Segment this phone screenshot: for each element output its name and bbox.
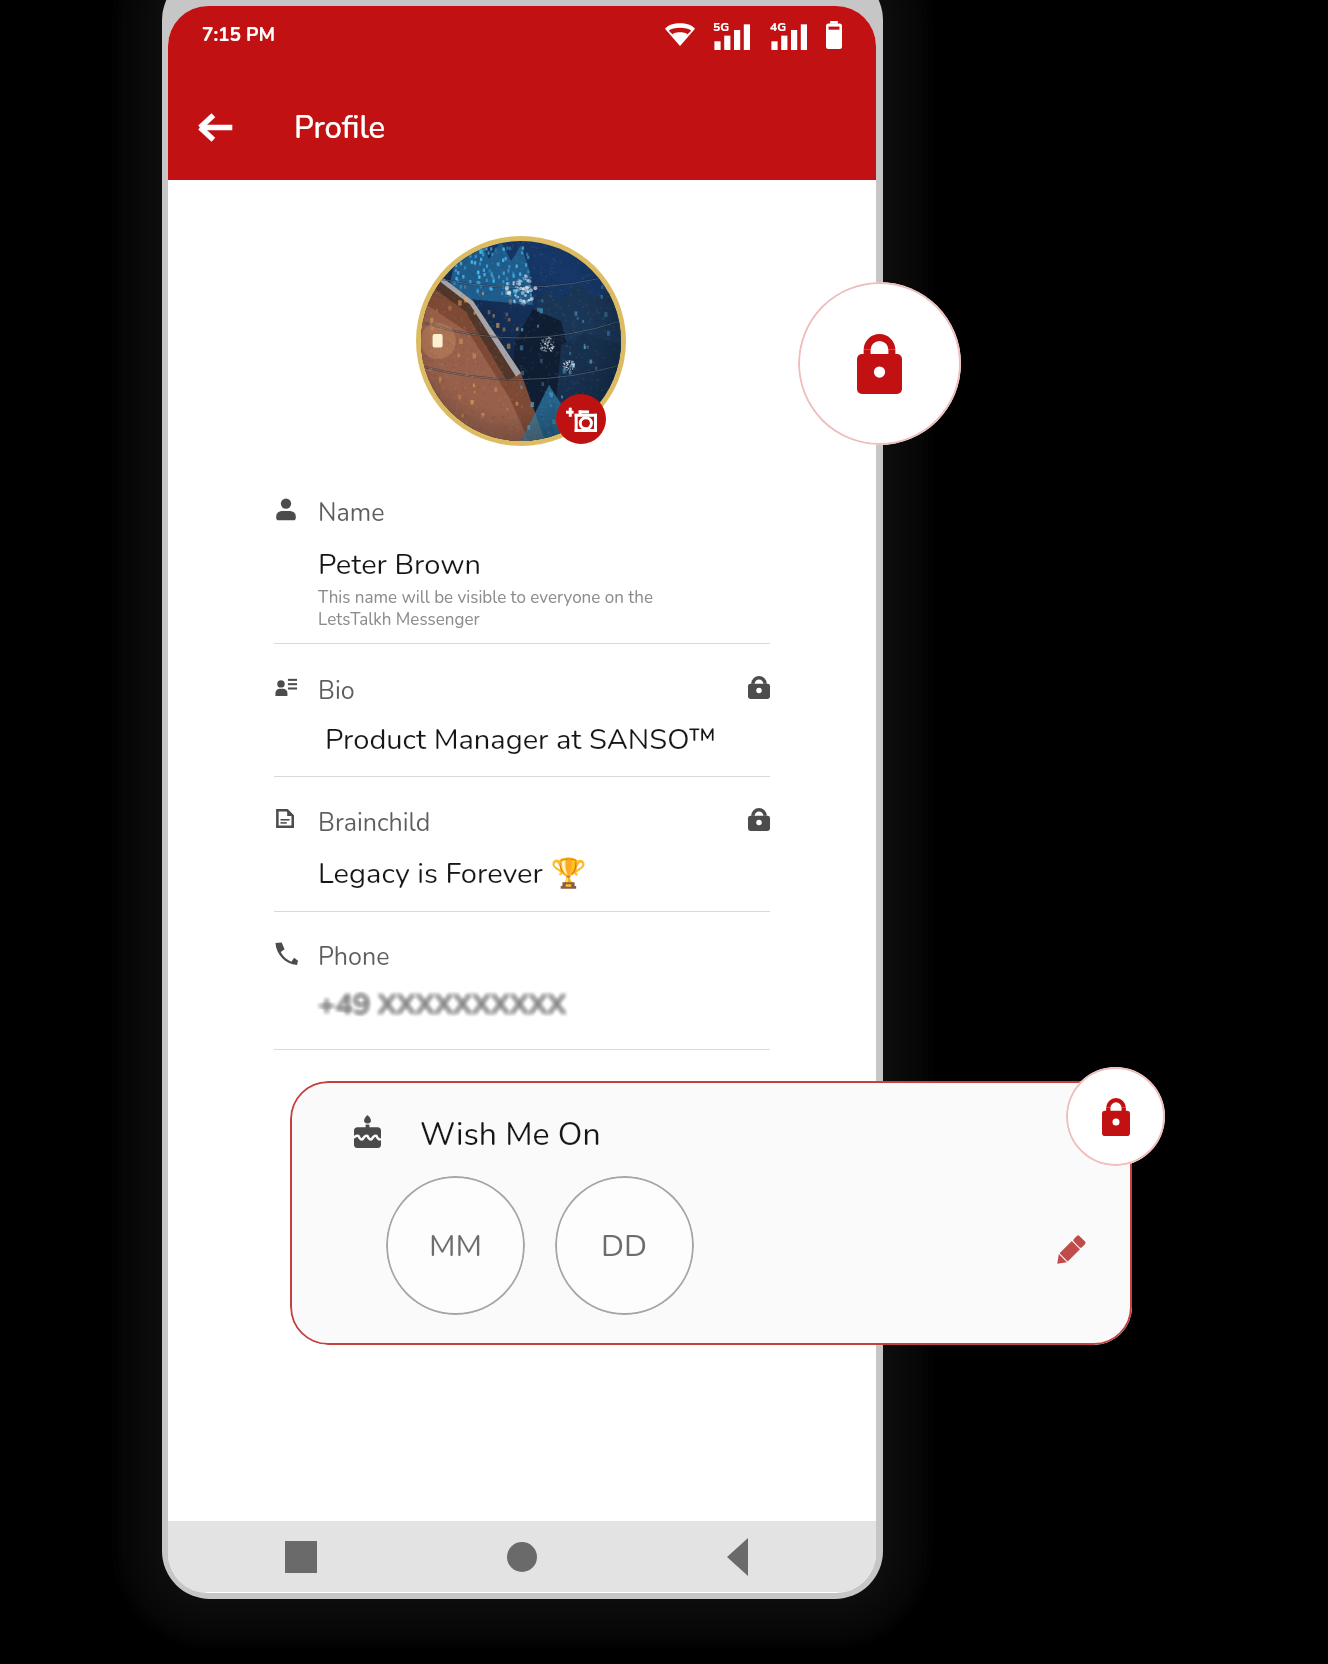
staticText: Phone (318, 940, 390, 966)
button[interactable]: Back (182, 94, 248, 160)
staticText: Peter Brown (318, 545, 481, 585)
button[interactable]: Profile photo (421, 241, 621, 441)
staticText: Name (318, 496, 385, 522)
staticText: +49 XXXXXXXXXX (319, 984, 568, 1024)
staticText: +49 XXXXXXXXXX (316, 984, 565, 1024)
staticText: +49 XXXXXXXXXX (316, 982, 565, 1022)
staticText: +49 XXXXXXXXXX (316, 983, 565, 1023)
staticText: +49 XXXXXXXXXX (319, 982, 568, 1022)
staticText: +49 XXXXXXXXXX (319, 983, 568, 1023)
staticText: +49 XXXXXXXXXX (316, 985, 565, 1025)
staticText: +49 XXXXXXXXXX (317, 982, 566, 1022)
button[interactable]: Privacy locked (798, 282, 961, 445)
staticText: +49 XXXXXXXXXX (315, 982, 564, 1022)
button[interactable]: Privacy locked (1066, 1067, 1165, 1166)
staticText: Product Manager at SANSO™ (325, 720, 716, 760)
staticText: Legacy is Forever 🏆 (318, 854, 587, 894)
button[interactable]: Edit birthday (1041, 1222, 1099, 1280)
staticText: +49 XXXXXXXXXX (316, 988, 565, 1028)
staticText: +49 XXXXXXXXXX (320, 986, 569, 1026)
staticText: +49 XXXXXXXXXX (318, 987, 567, 1027)
staticText: +49 XXXXXXXXXX (322, 983, 571, 1023)
staticText: +49 XXXXXXXXXX (321, 983, 570, 1023)
button[interactable] (274, 787, 770, 911)
staticText: +49 XXXXXXXXXX (314, 985, 563, 1025)
staticText: +49 XXXXXXXXXX (316, 986, 565, 1026)
staticText: +49 XXXXXXXXXX (314, 987, 563, 1027)
staticText: +49 XXXXXXXXXX (322, 982, 571, 1022)
staticText: +49 XXXXXXXXXX (315, 988, 564, 1028)
staticText: +49 XXXXXXXXXX (321, 984, 570, 1024)
staticText: +49 XXXXXXXXXX (318, 985, 567, 1025)
staticText: +49 XXXXXXXXXX (315, 987, 564, 1027)
button[interactable] (274, 655, 770, 776)
staticText: +49 XXXXXXXXXX (322, 987, 571, 1027)
staticText: +49 XXXXXXXXXX (320, 988, 569, 1028)
staticText: +49 XXXXXXXXXX (315, 983, 564, 1023)
staticText: 4G (770, 19, 787, 35)
button[interactable]: MM (386, 1176, 525, 1315)
staticText: +49 XXXXXXXXXX (314, 983, 563, 1023)
staticText: +49 XXXXXXXXXX (314, 986, 563, 1026)
button[interactable] (274, 482, 770, 643)
staticText: +49 XXXXXXXXXX (320, 985, 569, 1025)
staticText: +49 XXXXXXXXXX (319, 988, 568, 1028)
staticText: +49 XXXXXXXXXX (322, 986, 571, 1026)
staticText: +49 XXXXXXXXXX (321, 987, 570, 1027)
staticText: +49 XXXXXXXXXX (322, 988, 571, 1028)
staticText: Brainchild (318, 806, 431, 832)
staticText: +49 XXXXXXXXXX (318, 984, 567, 1024)
staticText: +49 XXXXXXXXXX (318, 982, 567, 1022)
staticText: Wish Me On (420, 1113, 601, 1157)
staticText: +49 XXXXXXXXXX (316, 987, 565, 1027)
staticText: +49 XXXXXXXXXX (322, 984, 571, 1024)
staticText: +49 XXXXXXXXXX (321, 988, 570, 1028)
staticText: +49 XXXXXXXXXX (320, 982, 569, 1022)
staticText: +49 XXXXXXXXXX (318, 986, 567, 1026)
staticText: +49 XXXXXXXXXX (319, 986, 568, 1026)
staticText: +49 XXXXXXXXXX (322, 985, 571, 1025)
button[interactable] (274, 923, 770, 1049)
staticText: +49 XXXXXXXXXX (319, 985, 568, 1025)
staticText: +49 XXXXXXXXXX (317, 988, 566, 1028)
staticText: +49 XXXXXXXXXX (320, 984, 569, 1024)
staticText: +49 XXXXXXXXXX (321, 982, 570, 1022)
staticText: +49 XXXXXXXXXX (317, 984, 566, 1024)
staticText: +49 XXXXXXXXXX (315, 985, 564, 1025)
staticText: +49 XXXXXXXXXX (318, 983, 567, 1023)
button[interactable]: Change photo (556, 394, 606, 444)
button[interactable]: Wish Me On (290, 1081, 1132, 1345)
staticText: +49 XXXXXXXXXX (317, 986, 566, 1026)
staticText: 7:15 PM (202, 22, 275, 48)
staticText: This name will be visible to everyone on… (318, 586, 653, 631)
staticText: +49 XXXXXXXXXX (318, 988, 567, 1028)
staticText: +49 XXXXXXXXXX (317, 985, 566, 1025)
staticText: +49 XXXXXXXXXX (319, 987, 568, 1027)
staticText: DD (601, 1225, 648, 1267)
staticText: +49 XXXXXXXXXX (314, 988, 563, 1028)
staticText: +49 XXXXXXXXXX (314, 982, 563, 1022)
button[interactable]: DD (555, 1176, 694, 1315)
staticText: Profile (294, 107, 386, 149)
staticText: Bio (318, 674, 355, 700)
staticText: +49 XXXXXXXXXX (321, 985, 570, 1025)
staticText: +49 XXXXXXXXXX (317, 987, 566, 1027)
staticText: +49 XXXXXXXXXX (320, 983, 569, 1023)
staticText: +49 XXXXXXXXXX (315, 984, 564, 1024)
staticText: +49 XXXXXXXXXX (317, 983, 566, 1023)
staticText: 5G (713, 19, 730, 35)
staticText: +49 XXXXXXXXXX (321, 986, 570, 1026)
staticText: MM (429, 1225, 483, 1267)
staticText: +49 XXXXXXXXXX (315, 986, 564, 1026)
staticText: +49 XXXXXXXXXX (314, 984, 563, 1024)
staticText: +49 XXXXXXXXXX (320, 987, 569, 1027)
